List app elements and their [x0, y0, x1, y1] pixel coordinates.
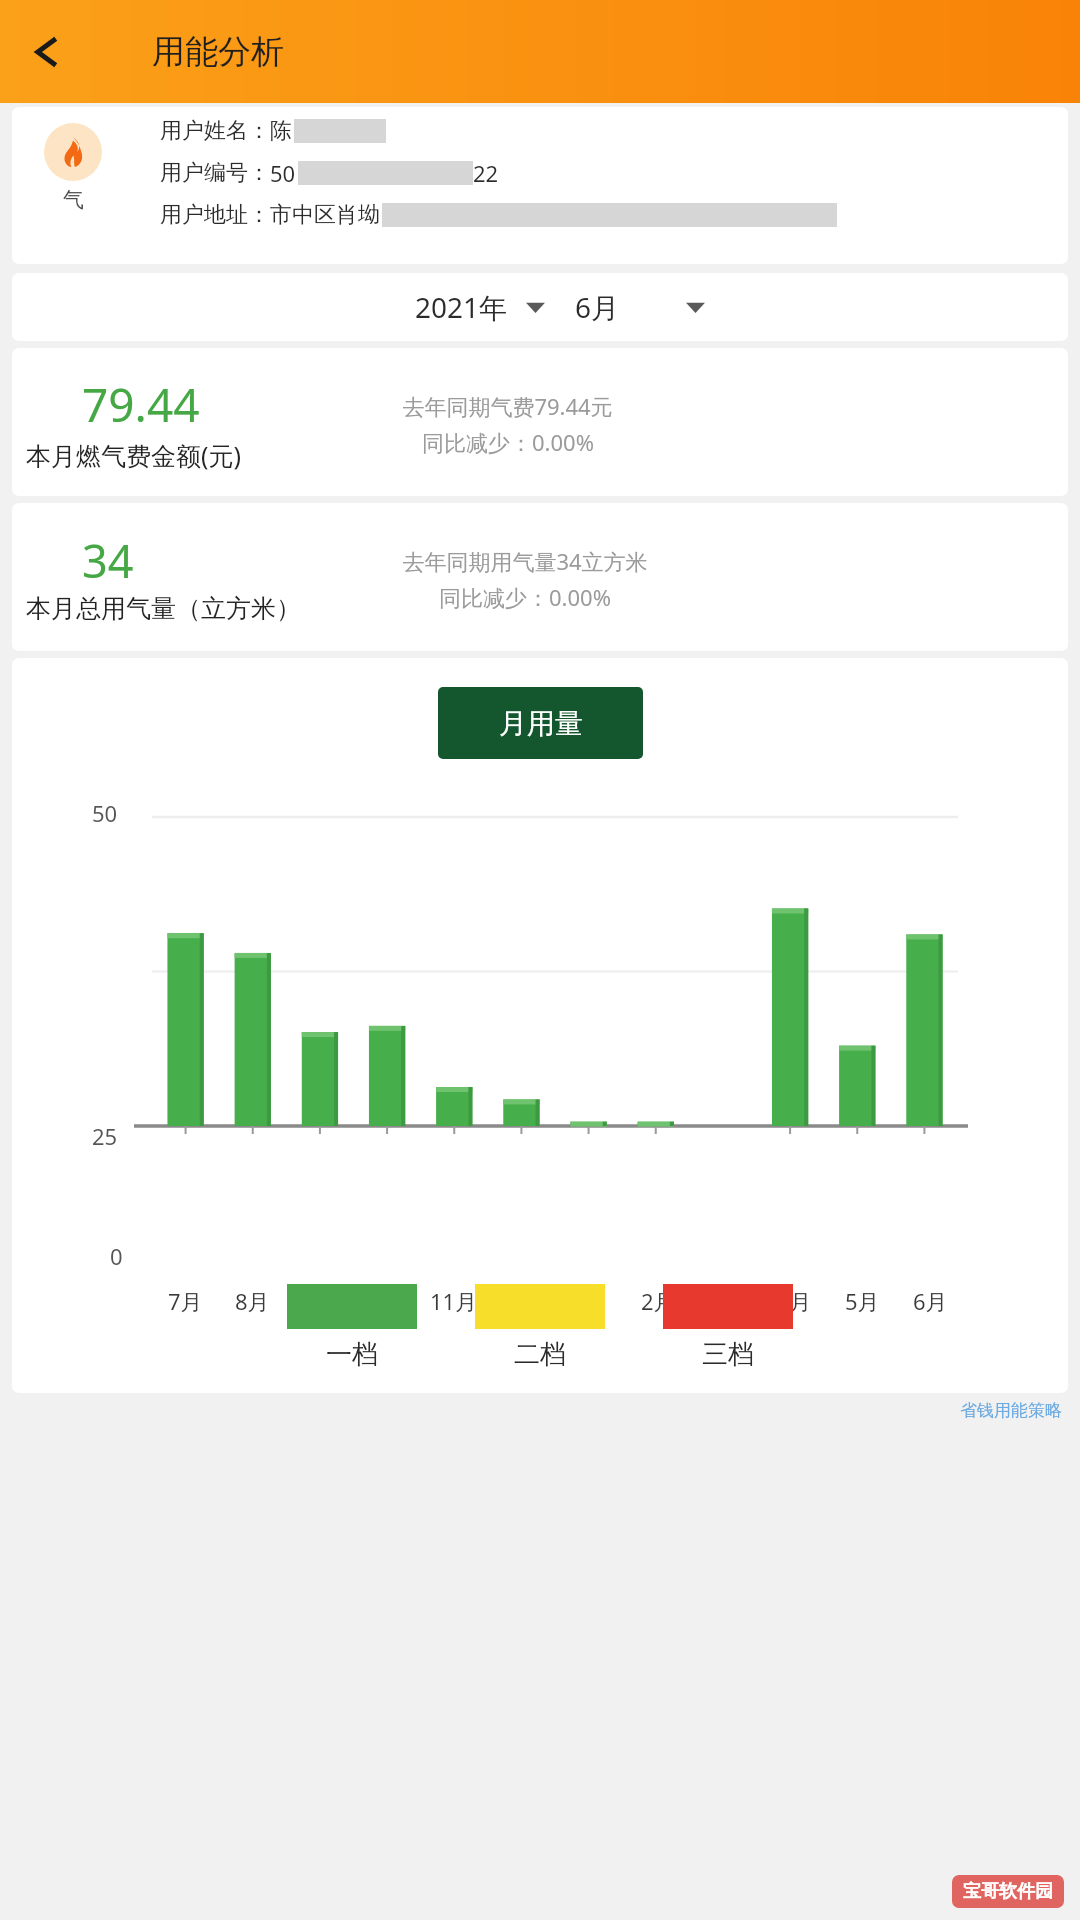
button[interactable]: 月用量 [438, 687, 643, 759]
staticText: 二档 [514, 1338, 566, 1371]
staticText: 同比减少：0.00% [439, 582, 611, 612]
staticText: 用户姓名： [160, 117, 270, 145]
staticText: 7月 [168, 1286, 203, 1316]
staticText: 6月 [575, 288, 620, 326]
staticText: 5月 [845, 1286, 880, 1316]
button[interactable]: 气 [12, 107, 1068, 264]
staticText: 去年同期用气量34立方米 [402, 546, 648, 576]
staticText: 25 [92, 1121, 118, 1151]
staticText: 4月 [777, 1286, 812, 1316]
staticText: 用户地址： [160, 201, 270, 229]
staticText: 三档 [702, 1338, 754, 1371]
button[interactable]: 34 [12, 503, 1068, 651]
button[interactable]: 2021年 [411, 282, 549, 332]
staticText: 2021年 [415, 288, 508, 326]
staticText: 本月燃气费金额(元) [26, 438, 242, 472]
staticText: 50 [270, 158, 296, 188]
staticText: 市中区肖坳 [270, 201, 380, 229]
staticText: 2月 [641, 1286, 676, 1316]
staticText: 34 [82, 530, 134, 591]
staticText: 省钱用能策略 [960, 1400, 1062, 1421]
staticText: 本月总用气量（立方米） [26, 593, 301, 624]
button[interactable]: 三档 [663, 1284, 793, 1371]
staticText: 50 [92, 798, 118, 828]
staticText: 1月 [573, 1286, 608, 1316]
staticText: 用户编号： [160, 159, 270, 187]
staticText: 6月 [913, 1286, 948, 1316]
button[interactable]: Back [14, 23, 72, 81]
staticText: 79.44 [82, 373, 200, 436]
staticText: 22 [473, 158, 499, 188]
staticText: 月用量 [499, 706, 583, 741]
staticText: 气 [63, 187, 84, 213]
button[interactable]: 6月 [571, 282, 709, 332]
button[interactable]: 79.44 [12, 348, 1068, 496]
staticText: 陈 [270, 117, 292, 145]
staticText: 用能分析 [152, 31, 284, 73]
staticText: 8月 [235, 1286, 270, 1316]
staticText: 去年同期气费79.44元 [402, 391, 613, 421]
staticText: 同比减少：0.00% [422, 427, 594, 457]
button[interactable]: 二档 [475, 1284, 605, 1371]
staticText: 一档 [326, 1338, 378, 1371]
button[interactable]: 省钱用能策略 [960, 1398, 1080, 1421]
staticText: 宝哥软件园 [963, 1880, 1053, 1903]
staticText: 0 [110, 1241, 123, 1271]
button[interactable]: 一档 [287, 1284, 417, 1371]
staticText: 11月 [430, 1286, 478, 1316]
